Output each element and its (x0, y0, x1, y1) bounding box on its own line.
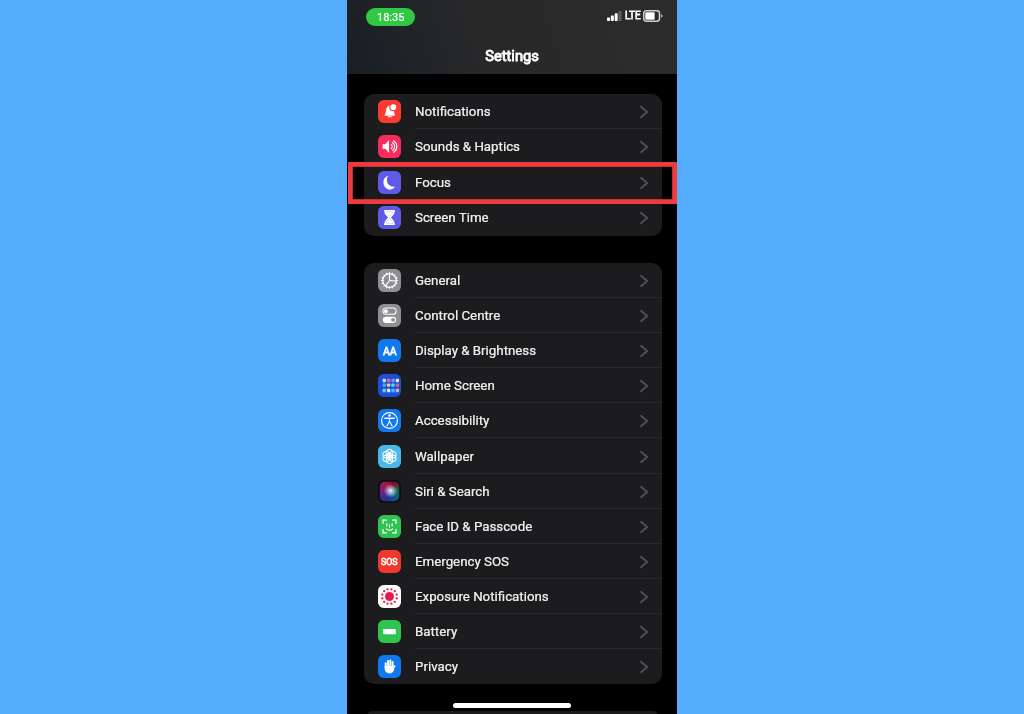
button[interactable]: Accessibility (364, 403, 662, 438)
staticText: Emergency SOS (415, 554, 510, 570)
staticText: Wallpaper (415, 449, 475, 465)
staticText: Focus (415, 175, 451, 191)
staticText: Exposure Notifications (415, 589, 549, 605)
staticText: Notifications (415, 104, 491, 120)
button[interactable]: General (364, 263, 662, 298)
button[interactable]: Wallpaper (364, 439, 662, 474)
button[interactable]: SOS (364, 544, 662, 579)
staticText: Screen Time (415, 210, 489, 226)
button[interactable]: Notifications (364, 94, 662, 129)
staticText: Privacy (415, 659, 458, 675)
staticText: Siri & Search (415, 484, 490, 500)
staticText: Sounds & Haptics (415, 139, 520, 155)
button[interactable]: Face ID & Passcode (364, 509, 662, 544)
staticText: Accessibility (415, 413, 490, 429)
button[interactable]: Home Screen (364, 368, 662, 403)
staticText: SOS (381, 557, 398, 567)
staticText: Battery (415, 624, 458, 640)
staticText: Face ID & Passcode (415, 519, 533, 535)
staticText: Settings (485, 47, 539, 64)
staticText: Home Screen (415, 378, 495, 394)
staticText: Display & Brightness (415, 343, 537, 359)
button[interactable]: Focus (364, 165, 662, 200)
button[interactable]: Siri & Search (364, 474, 662, 509)
staticText: 18:35 (377, 11, 405, 24)
button[interactable]: Screen Time (364, 200, 662, 235)
button[interactable]: Battery (364, 614, 662, 649)
button[interactable]: Control Centre (364, 298, 662, 333)
staticText: AA (383, 345, 397, 357)
staticText: Control Centre (415, 308, 501, 324)
button[interactable]: Sounds & Haptics (364, 129, 662, 164)
button[interactable]: Exposure Notifications (364, 579, 662, 614)
staticText: General (415, 273, 461, 289)
button[interactable]: Privacy (364, 649, 662, 684)
button[interactable]: AA (364, 333, 662, 368)
staticText: LTE (625, 10, 641, 22)
